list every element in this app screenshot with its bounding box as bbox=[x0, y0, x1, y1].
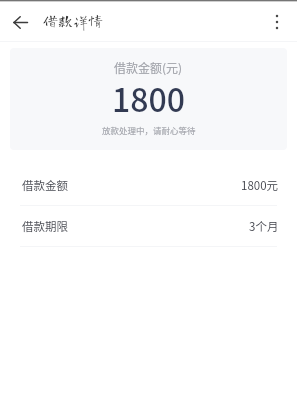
staticText: 借款详情 bbox=[43, 13, 104, 28]
staticText: 1800元 bbox=[241, 177, 279, 194]
button[interactable]: 借款金额 bbox=[0, 165, 297, 205]
staticText: 借款金额(元) bbox=[114, 59, 183, 76]
button[interactable]: More options bbox=[257, 2, 297, 42]
button[interactable]: Back bbox=[0, 2, 40, 42]
staticText: 1800 bbox=[112, 75, 185, 121]
staticText: 3个月 bbox=[249, 218, 279, 235]
staticText: 放款处理中，请耐心等待 bbox=[102, 124, 196, 136]
staticText: 借款金额 bbox=[22, 177, 68, 194]
button[interactable]: 借款期限 bbox=[0, 206, 297, 246]
staticText: 借款期限 bbox=[22, 218, 68, 235]
